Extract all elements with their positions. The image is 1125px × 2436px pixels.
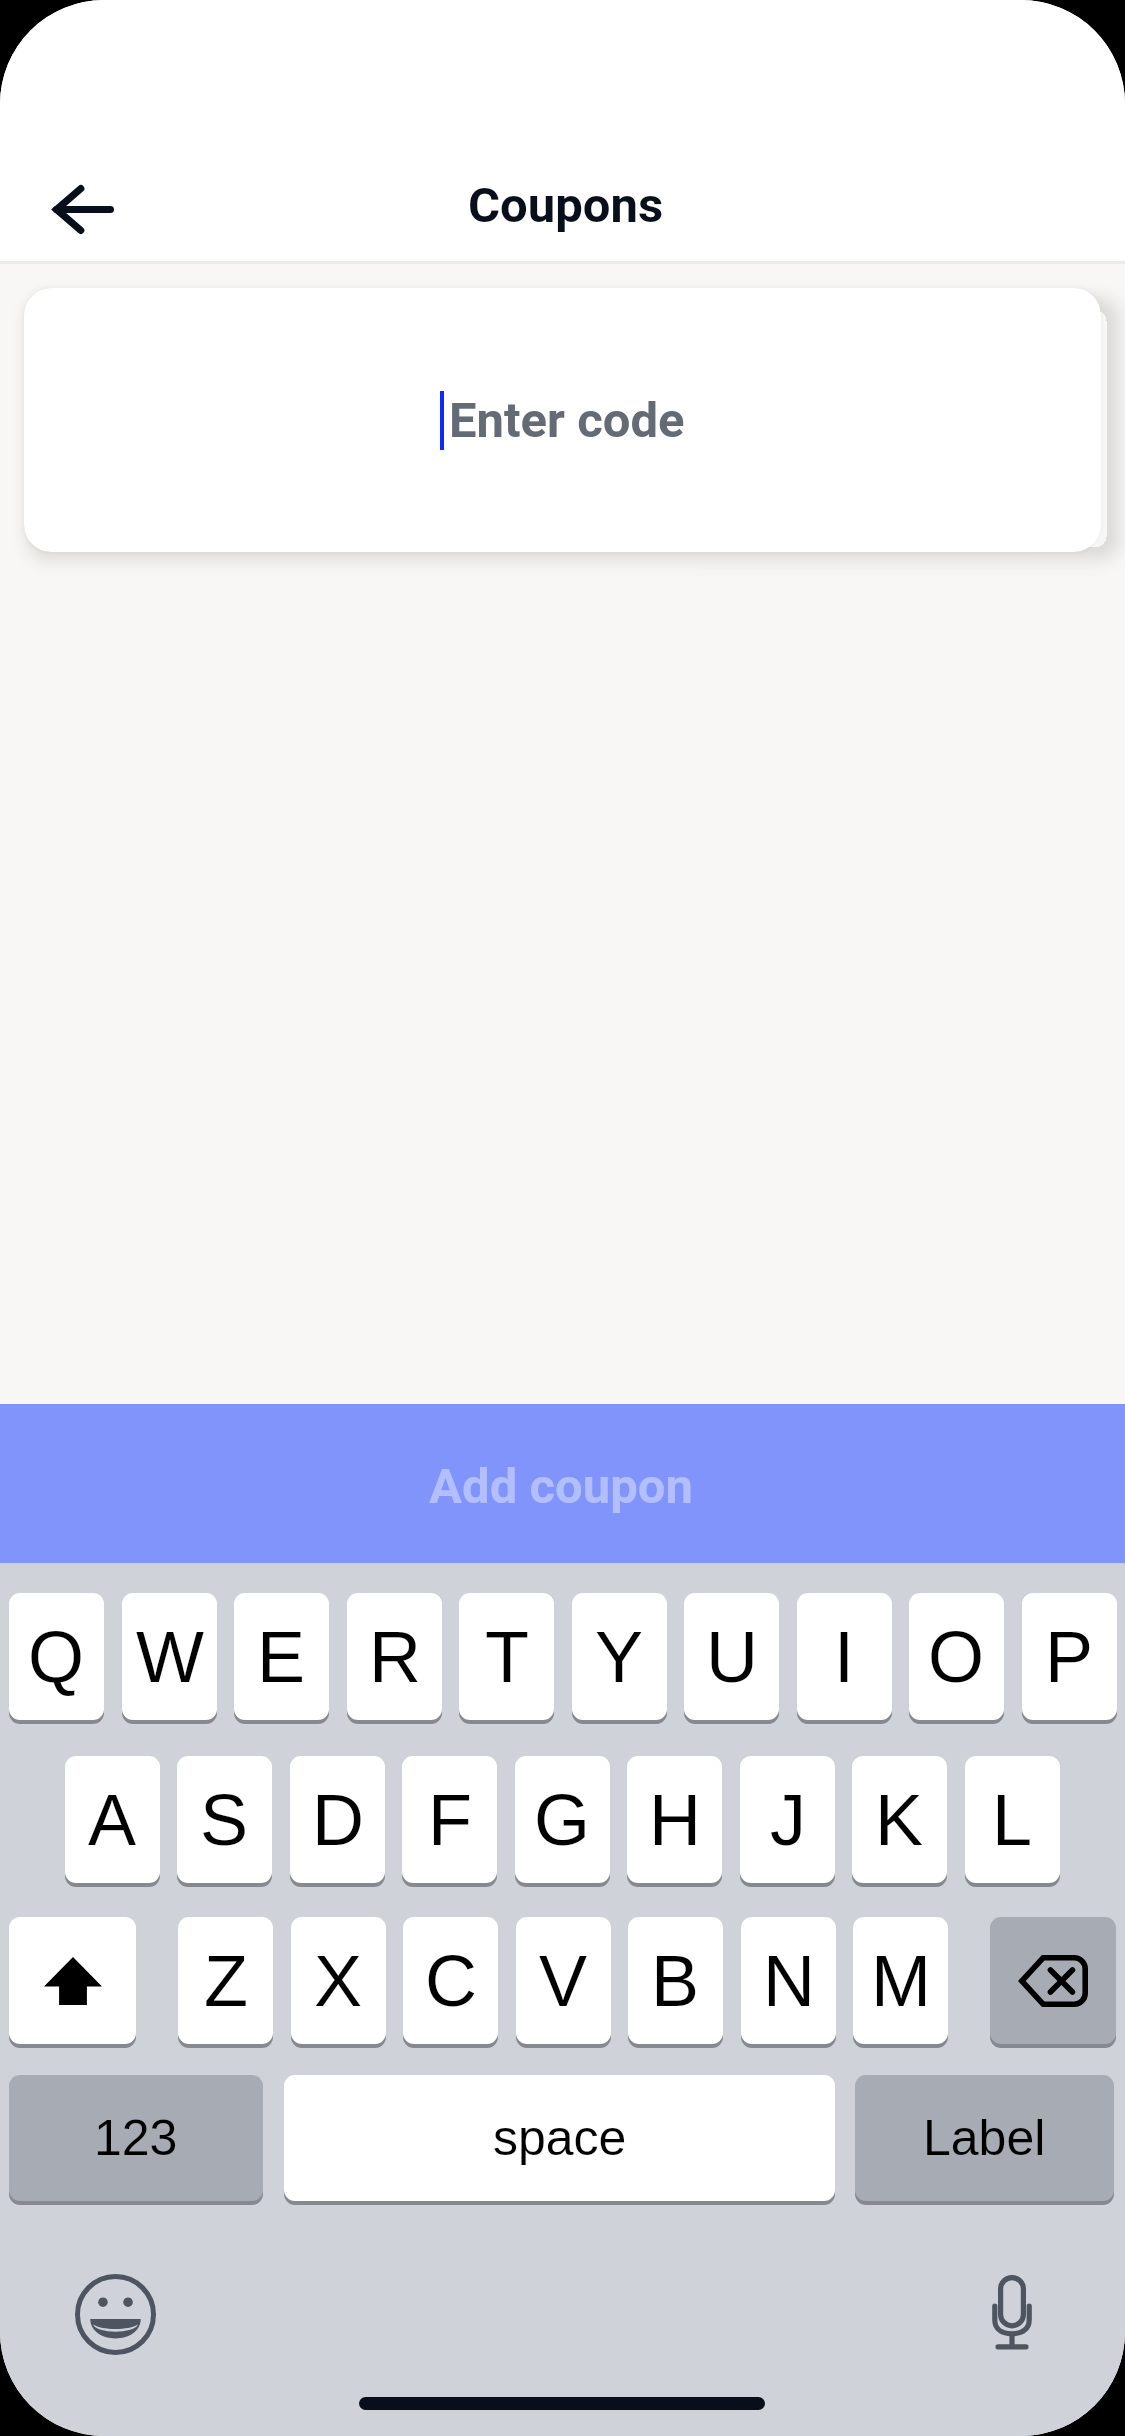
button[interactable]: X [291, 1917, 386, 2044]
staticText: A [88, 1780, 137, 1860]
button[interactable]: A [65, 1756, 160, 1883]
staticText: F [428, 1780, 472, 1860]
button[interactable]: D [290, 1756, 385, 1883]
button[interactable]: space [284, 2075, 835, 2201]
button[interactable]: N [741, 1917, 836, 2044]
staticText: K [875, 1780, 924, 1860]
button[interactable]: T [459, 1593, 554, 1720]
button[interactable]: Add coupon [0, 1404, 1125, 1563]
button[interactable]: R [347, 1593, 442, 1720]
button[interactable]: S [177, 1756, 272, 1883]
staticText: N [763, 1941, 815, 2021]
button[interactable]: J [740, 1756, 835, 1883]
staticText: Add coupon [429, 1458, 693, 1515]
staticText: B [651, 1941, 700, 2021]
staticText: space [493, 2110, 627, 2166]
button[interactable]: M [853, 1917, 948, 2044]
staticText: W [136, 1617, 204, 1697]
staticText: H [649, 1780, 701, 1860]
staticText: O [928, 1617, 985, 1697]
staticText: D [312, 1780, 364, 1860]
staticText: L [992, 1780, 1033, 1860]
button[interactable]: W [122, 1593, 217, 1720]
staticText: Coupons [3, 177, 1125, 234]
button[interactable]: I [797, 1593, 892, 1720]
button[interactable]: Z [178, 1917, 273, 2044]
staticText: V [539, 1941, 588, 2021]
staticText: P [1045, 1617, 1094, 1697]
button[interactable]: Y [572, 1593, 667, 1720]
button[interactable]: U [684, 1593, 779, 1720]
staticText: C [425, 1941, 477, 2021]
button[interactable]: P [1022, 1593, 1117, 1720]
button[interactable]: Label [855, 2075, 1114, 2201]
staticText: Z [204, 1941, 248, 2021]
button[interactable]: Q [9, 1593, 104, 1720]
staticText: S [200, 1780, 249, 1860]
staticText: U [706, 1617, 758, 1697]
staticText: M [871, 1941, 931, 2021]
staticText: Enter code [449, 392, 685, 449]
button[interactable]: Back [37, 167, 129, 251]
button[interactable]: Backspace [990, 1917, 1116, 2044]
button[interactable]: F [402, 1756, 497, 1883]
staticText: X [314, 1941, 363, 2021]
button[interactable]: G [515, 1756, 610, 1883]
button[interactable]: C [403, 1917, 498, 2044]
staticText: Q [28, 1617, 85, 1697]
staticText: I [834, 1617, 855, 1697]
button[interactable]: B [628, 1917, 723, 2044]
button[interactable]: Shift [9, 1917, 136, 2044]
button[interactable]: Emoji keyboard [75, 2274, 156, 2355]
button[interactable]: H [627, 1756, 722, 1883]
staticText: Y [595, 1617, 644, 1697]
staticText: Label [923, 2110, 1046, 2166]
staticText: R [369, 1617, 421, 1697]
button[interactable]: V [516, 1917, 611, 2044]
button[interactable]: Dictation [989, 2275, 1035, 2351]
staticText: G [534, 1780, 591, 1860]
button[interactable]: 123 [9, 2075, 263, 2201]
button[interactable]: E [234, 1593, 329, 1720]
staticText: J [770, 1780, 806, 1860]
button[interactable]: L [965, 1756, 1060, 1883]
button[interactable]: Enter code [24, 288, 1101, 552]
staticText: 123 [94, 2110, 178, 2166]
button[interactable]: K [852, 1756, 947, 1883]
staticText: T [485, 1617, 529, 1697]
staticText: E [257, 1617, 306, 1697]
button[interactable]: O [909, 1593, 1004, 1720]
